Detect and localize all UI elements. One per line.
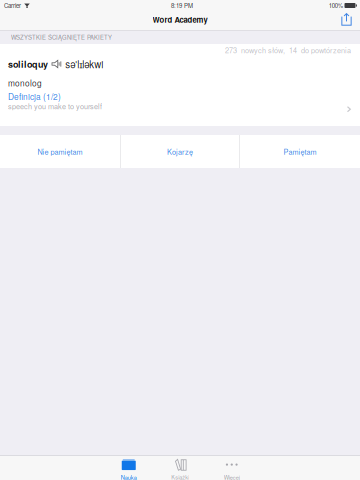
- button[interactable]: Share: [334, 11, 360, 30]
- staticText: monolog: [8, 77, 42, 89]
- staticText: sə'lɪləkwi: [65, 57, 103, 71]
- button[interactable]: Nauka: [103, 456, 154, 480]
- staticText: speech you make to yourself: [8, 101, 102, 111]
- button[interactable]: Kojarzę: [120, 135, 239, 168]
- staticText: Kojarzę: [167, 146, 193, 157]
- staticText: Książki: [171, 473, 189, 480]
- staticText: soliloquy: [8, 58, 48, 70]
- staticText: Więcej: [224, 473, 240, 480]
- staticText: 100%: [329, 1, 343, 10]
- button[interactable]: Więcej: [206, 456, 257, 480]
- button[interactable]: Książki: [154, 456, 206, 480]
- staticText: Pamiętam: [283, 146, 316, 157]
- button[interactable]: soliloquy: [0, 56, 360, 126]
- button[interactable]: Pamiętam: [240, 135, 360, 168]
- staticText: Carrier: [4, 1, 21, 10]
- staticText: 273 nowych słów, 14 do powtórzenia: [225, 45, 351, 55]
- staticText: Nauka: [121, 473, 137, 480]
- staticText: WSZYSTKIE ŚCIĄGNIĘTE PAKIETY: [11, 33, 112, 41]
- staticText: Nie pamiętam: [37, 146, 82, 157]
- staticText: Definicja (1/2): [8, 90, 61, 102]
- button[interactable]: Nie pamiętam: [0, 135, 120, 168]
- staticText: Word Academy: [152, 14, 207, 25]
- staticText: 8:19 PM: [171, 1, 193, 10]
